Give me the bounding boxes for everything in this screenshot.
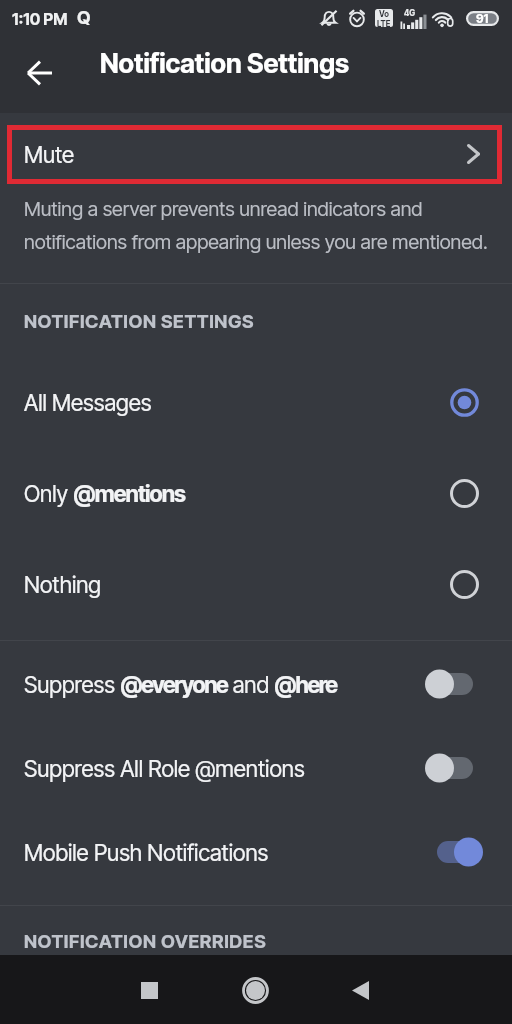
- staticText: 91: [476, 11, 489, 26]
- button[interactable]: Home: [226, 961, 285, 1020]
- staticText: NOTIFICATION OVERRIDES: [24, 930, 267, 952]
- button[interactable]: Only @mentions: [0, 463, 512, 523]
- staticText: Mobile Push Notifications: [24, 839, 269, 866]
- button[interactable]: Mute: [0, 125, 512, 183]
- button[interactable]: All Messages: [0, 372, 512, 432]
- button[interactable]: Suppress All Role @mentions: [0, 740, 512, 796]
- staticText: Suppress All Role @mentions: [24, 755, 305, 782]
- staticText: All Messages: [24, 389, 152, 416]
- staticText: Nothing: [24, 571, 101, 598]
- staticText: NOTIFICATION SETTINGS: [24, 310, 255, 332]
- staticText: Muting a server prevents unread indicato…: [24, 197, 423, 221]
- button[interactable]: Nothing: [0, 554, 512, 614]
- staticText: 1:10 PM: [12, 9, 68, 28]
- staticText: Vo: [379, 9, 389, 19]
- staticText: Mute: [24, 141, 75, 168]
- button[interactable]: Back: [14, 47, 66, 99]
- button[interactable]: Recent apps: [120, 961, 179, 1020]
- staticText: LTE: [377, 19, 391, 27]
- button[interactable]: Mobile Push Notifications: [0, 824, 512, 880]
- button[interactable]: Suppress @everyone and @here: [0, 656, 512, 712]
- button[interactable]: Back: [331, 961, 390, 1020]
- staticText: Q: [77, 7, 91, 29]
- staticText: Only @mentions: [24, 480, 186, 507]
- staticText: Suppress @everyone and @here: [24, 671, 337, 698]
- staticText: notifications from appearing unless you …: [24, 230, 488, 254]
- staticText: 4G: [404, 8, 415, 18]
- staticText: Notification Settings: [100, 47, 350, 79]
